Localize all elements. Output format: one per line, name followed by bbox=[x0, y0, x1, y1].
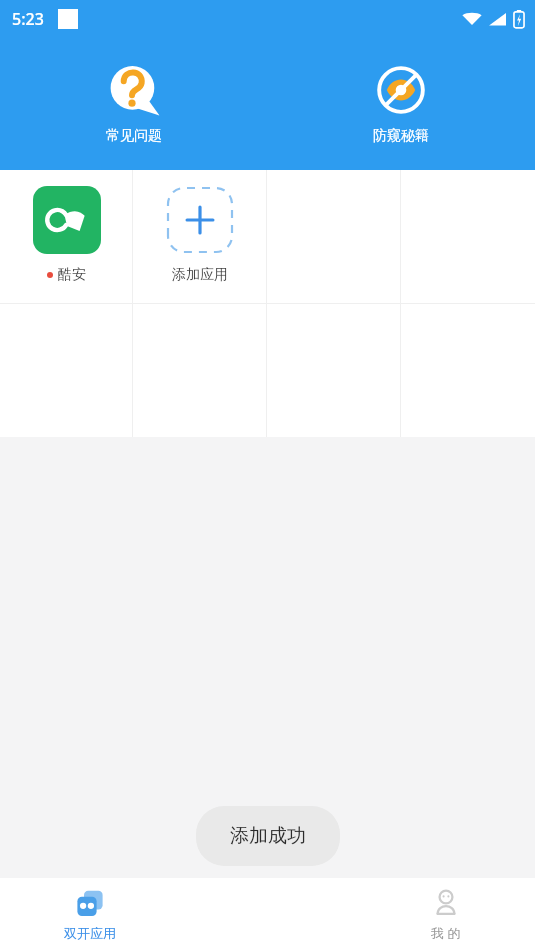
staticText: 常见问题 bbox=[106, 127, 162, 145]
other: 我的 bbox=[431, 888, 461, 918]
staticText: 5:23 bbox=[12, 8, 44, 30]
staticText: 我 的 bbox=[431, 924, 461, 942]
button[interactable]: 酷安 bbox=[0, 170, 133, 303]
staticText: 双开应用 bbox=[64, 925, 116, 941]
button[interactable]: 防窥秘籍 bbox=[267, 38, 535, 170]
button[interactable]: 常见问题 bbox=[0, 38, 267, 170]
staticText: 添加应用 bbox=[172, 266, 228, 284]
other: 双开应用 bbox=[75, 889, 105, 919]
button[interactable]: 双开应用 bbox=[0, 878, 179, 952]
staticText: 酷安 bbox=[58, 266, 86, 284]
staticText: 防窥秘籍 bbox=[373, 127, 429, 145]
button[interactable]: 我的 bbox=[357, 878, 535, 952]
button[interactable]: 添加应用 bbox=[133, 170, 267, 303]
staticText: 添加成功 bbox=[230, 824, 306, 848]
